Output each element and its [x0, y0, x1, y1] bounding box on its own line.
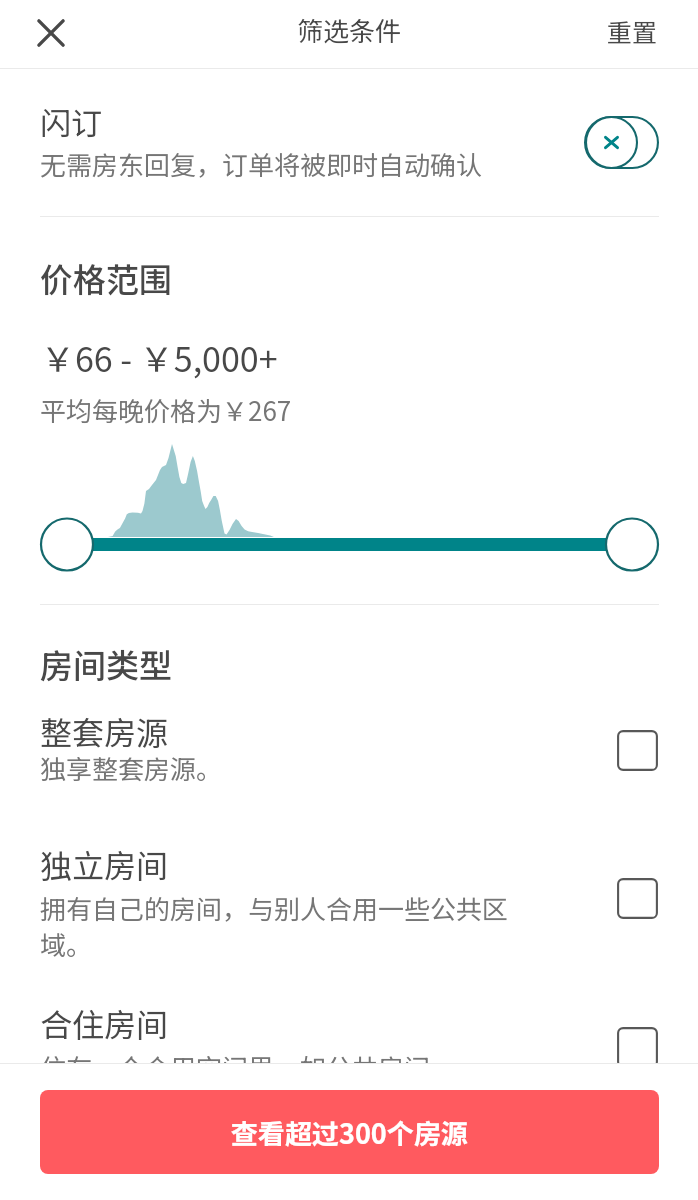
staticText: 整套房源	[40, 708, 169, 754]
button[interactable]: 独立房间	[617, 878, 658, 919]
button[interactable]: 整套房源	[0, 698, 698, 813]
button[interactable]: 关闭	[22, 4, 79, 61]
staticText: 价格范围	[40, 254, 172, 302]
staticText: 房间类型	[40, 640, 172, 688]
staticText: 合住房间	[40, 1000, 169, 1046]
button[interactable]: 闪订开关	[584, 115, 659, 170]
button[interactable]: 合住房间	[0, 990, 698, 1105]
button[interactable]: 合住房间	[617, 1027, 658, 1068]
button[interactable]: 整套房源	[617, 730, 658, 771]
staticText: 重置	[607, 13, 658, 49]
staticText: 筛选条件	[297, 11, 402, 49]
button[interactable]: 查看超过300个房源	[40, 1090, 659, 1174]
button[interactable]: 独立房间	[0, 831, 698, 946]
staticText: 拥有自己的房间，与别人合用一些公共区域。	[40, 889, 520, 962]
staticText: 独享整套房源。	[40, 749, 520, 787]
staticText: 查看超过300个房源	[231, 1113, 468, 1152]
button[interactable]: 闪订	[0, 69, 698, 216]
staticText: 独立房间	[40, 841, 169, 887]
staticText: 闪订	[40, 99, 102, 144]
staticText: 住在一个合用空间里，如公共房间。	[40, 1048, 520, 1086]
staticText: 平均每晚价格为￥267	[40, 391, 292, 429]
staticText: ￥66 - ￥5,000+	[41, 333, 278, 382]
button[interactable]: 重置	[595, 1, 689, 61]
staticText: 无需房东回复，订单将被即时自动确认	[40, 145, 483, 183]
